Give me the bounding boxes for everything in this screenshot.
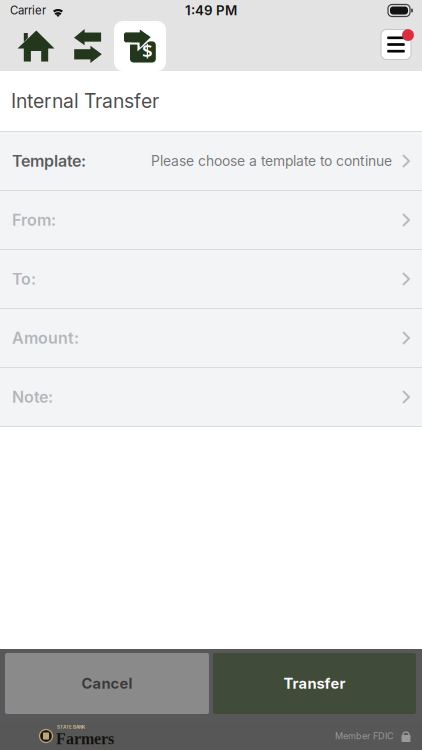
staticText: Transfer (283, 675, 345, 692)
button[interactable]: To: (0, 250, 422, 309)
staticText: Carrier (10, 4, 46, 17)
button[interactable]: Transfers (62, 21, 114, 71)
staticText: Cancel (81, 675, 132, 692)
button[interactable]: Amount: (0, 309, 422, 368)
staticText: From: (12, 210, 56, 230)
button[interactable]: Menu (381, 29, 414, 62)
button[interactable]: Transfer (213, 653, 416, 714)
staticText: Member FDIC (335, 730, 394, 741)
button[interactable]: Home (10, 21, 62, 71)
staticText: Note: (12, 387, 53, 407)
button[interactable]: Cancel (5, 653, 209, 714)
button[interactable]: From: (0, 191, 422, 250)
button[interactable]: Internal Transfer (114, 21, 166, 71)
staticText: 1:49 PM (185, 2, 237, 18)
button[interactable]: Note: (0, 368, 422, 427)
staticText: Farmers (56, 730, 114, 748)
staticText: Template: (12, 151, 86, 171)
staticText: Please choose a template to continue (151, 153, 392, 169)
staticText: STATE BANK (57, 724, 85, 730)
button[interactable]: Template: (0, 132, 422, 191)
staticText: $ (142, 38, 153, 63)
staticText: To: (12, 269, 36, 289)
staticText: Internal Transfer (11, 89, 159, 113)
staticText: Amount: (12, 328, 79, 348)
